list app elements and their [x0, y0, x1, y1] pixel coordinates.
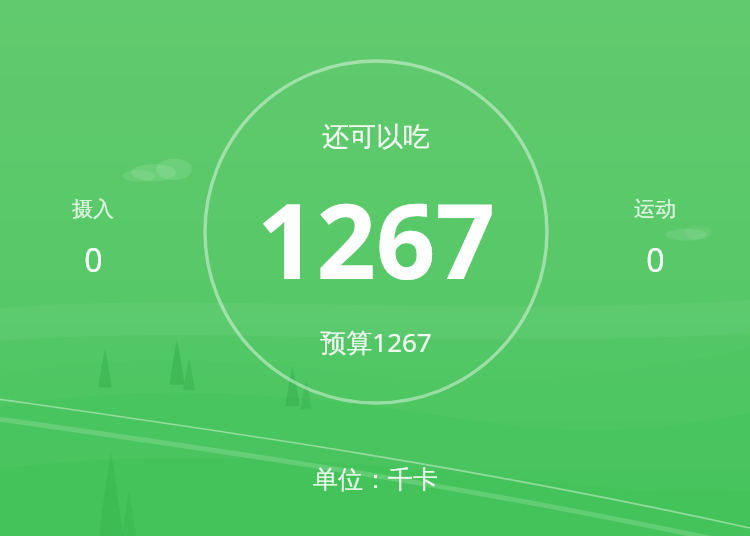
button[interactable]: 单位：千卡 [313, 464, 438, 495]
staticText: 还可以吃 [322, 120, 430, 154]
staticText: 0 [646, 238, 665, 282]
button[interactable]: 摄入 [58, 196, 128, 282]
staticText: 单位：千卡 [313, 464, 438, 495]
staticText: 1267 [257, 168, 495, 310]
staticText: 0 [84, 238, 103, 282]
button[interactable]: 运动 [620, 196, 690, 282]
button[interactable]: 还可以吃 [257, 120, 495, 360]
staticText: 摄入 [72, 196, 114, 222]
staticText: 预算1267 [320, 324, 432, 360]
staticText: 运动 [634, 196, 676, 222]
